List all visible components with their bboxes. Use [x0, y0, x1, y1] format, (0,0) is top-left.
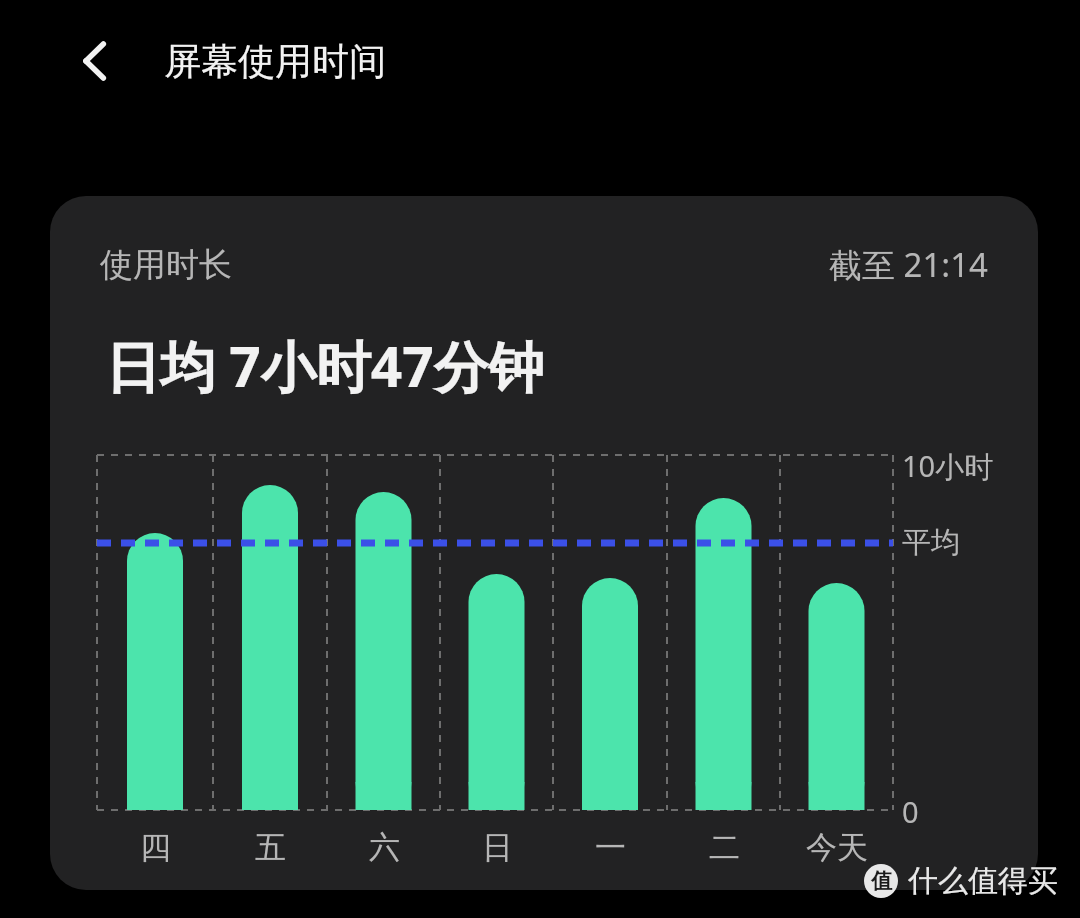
- button[interactable]: 使用时长: [50, 196, 1038, 890]
- staticText: 什么值得买: [908, 862, 1058, 900]
- staticText: 六: [369, 828, 400, 867]
- button[interactable]: 一: [550, 822, 670, 872]
- button[interactable]: 二: [664, 822, 784, 872]
- staticText: 10小时: [902, 446, 994, 486]
- staticText: 一: [595, 828, 626, 867]
- staticText: 屏幕使用时间: [164, 38, 386, 85]
- staticText: 五: [255, 828, 286, 867]
- staticText: 日均 7小时47分钟: [105, 328, 544, 403]
- staticText: 平均: [902, 524, 960, 561]
- button[interactable]: Back: [58, 23, 134, 99]
- staticText: 二: [709, 828, 740, 867]
- button[interactable]: 日: [437, 822, 557, 872]
- button[interactable]: 四: [95, 822, 215, 872]
- button[interactable]: 六: [324, 822, 444, 872]
- staticText: 今天: [806, 828, 868, 867]
- staticText: 截至 21:14: [829, 242, 988, 287]
- staticText: 值: [871, 868, 892, 894]
- staticText: 使用时长: [100, 244, 232, 286]
- button[interactable]: 五: [210, 822, 330, 872]
- staticText: 日: [482, 828, 513, 867]
- button[interactable]: 今天: [777, 822, 897, 872]
- staticText: 四: [140, 828, 171, 867]
- staticText: 0: [902, 792, 919, 831]
